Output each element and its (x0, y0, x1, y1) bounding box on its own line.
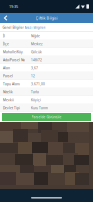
staticText: 148/72 (31, 58, 42, 62)
staticText: Nitelik (3, 90, 13, 94)
staticText: Parsel (3, 74, 13, 78)
staticText: Gölcük (31, 50, 42, 54)
button[interactable]: Genel Bilgiler (2, 23, 24, 32)
button[interactable]: Parselde Görüntüle (2, 113, 91, 121)
staticText: Merkez (31, 42, 43, 46)
staticText: Parselde Görüntüle (31, 115, 61, 119)
staticText: Ada/Parsel No (3, 58, 25, 62)
staticText: 12 (31, 74, 35, 78)
staticText: Tapu Alanı (3, 82, 20, 86)
staticText: 3,67 (31, 66, 38, 70)
staticText: Köyiçi (31, 98, 41, 102)
staticText: Tarla (31, 90, 39, 94)
staticText: Genel Bilgiler (2, 25, 23, 30)
button[interactable]: Back (0, 13, 11, 23)
staticText: Alan (3, 66, 10, 70)
staticText: Çiftlik Bilgisi (35, 15, 57, 21)
button[interactable]: Arazi Bilgileri (24, 23, 46, 32)
staticText: 3.671,00 (31, 82, 45, 86)
staticText: 19:35 (9, 4, 18, 9)
staticText: Arazi Bilgileri (24, 25, 45, 30)
staticText: İlçe (3, 42, 9, 46)
staticText: Mahalle/Köy (3, 50, 23, 54)
staticText: İl (3, 34, 5, 38)
staticText: Kuru Tarım (31, 106, 48, 110)
staticText: Niğde (31, 34, 40, 38)
staticText: Devlet Tipi (3, 106, 20, 110)
staticText: Mevkii (3, 98, 14, 102)
